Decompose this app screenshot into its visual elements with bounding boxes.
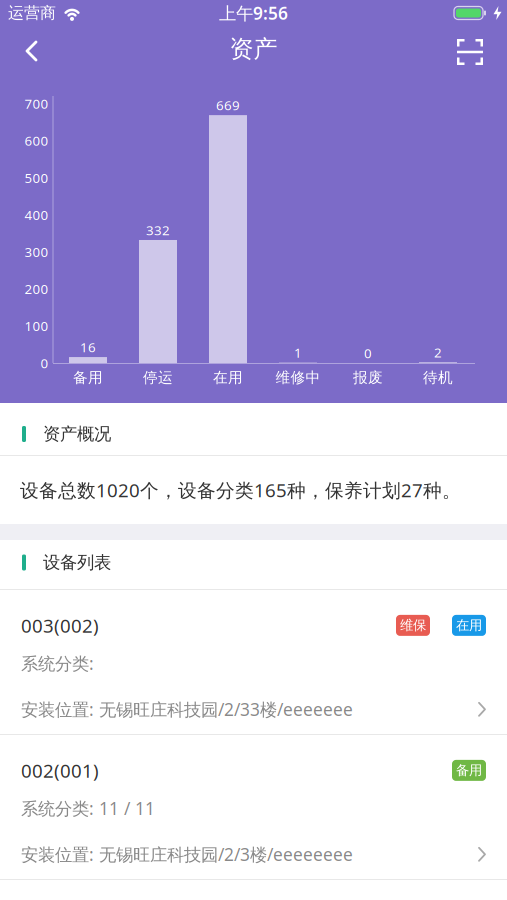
staticText: 资产 (229, 34, 277, 64)
staticText: 安装位置: 无锡旺庄科技园/2/3楼/eeeeeeee (21, 843, 353, 866)
staticText: 维修中 (275, 368, 320, 386)
staticText: 002(001) (21, 758, 99, 783)
staticText: 在用 (213, 368, 243, 386)
staticText: 300 (24, 243, 48, 261)
staticText: 维保 (400, 617, 426, 634)
staticText: 备用 (456, 762, 482, 779)
staticText: 2 (434, 343, 442, 361)
staticText: 报废 (353, 368, 383, 386)
staticText: 运营商 (8, 3, 56, 23)
staticText: 安装位置: 无锡旺庄科技园/2/33楼/eeeeeee (21, 698, 353, 721)
staticText: 500 (24, 169, 48, 187)
staticText: 700 (24, 95, 48, 112)
staticText: 0 (364, 344, 372, 362)
staticText: 669 (216, 96, 240, 114)
staticText: 系统分类: 11 / 11 (21, 797, 155, 820)
staticText: 设备总数1020个，设备分类165种，保养计划27种。 (20, 478, 461, 502)
button[interactable]: 扫一扫 (447, 29, 493, 75)
staticText: 停运 (143, 368, 173, 386)
staticText: 资产概况 (43, 423, 111, 445)
staticText: 设备列表 (43, 552, 111, 573)
staticText: 1 (294, 344, 302, 361)
staticText: 100 (24, 317, 48, 335)
staticText: 200 (24, 280, 48, 298)
staticText: 系统分类: (21, 652, 94, 675)
staticText: 待机 (423, 368, 453, 386)
button[interactable]: 返回 (13, 28, 51, 74)
button[interactable]: 002(001) (0, 735, 507, 880)
staticText: 600 (24, 132, 48, 149)
staticText: 在用 (456, 617, 482, 634)
staticText: 0 (40, 354, 48, 372)
staticText: 16 (80, 338, 96, 356)
staticText: 003(002) (21, 613, 99, 638)
staticText: 332 (146, 221, 170, 239)
button[interactable]: 003(002) (0, 590, 507, 735)
staticText: 备用 (73, 368, 103, 386)
staticText: 400 (24, 206, 48, 224)
staticText: 上午9:56 (219, 1, 288, 24)
